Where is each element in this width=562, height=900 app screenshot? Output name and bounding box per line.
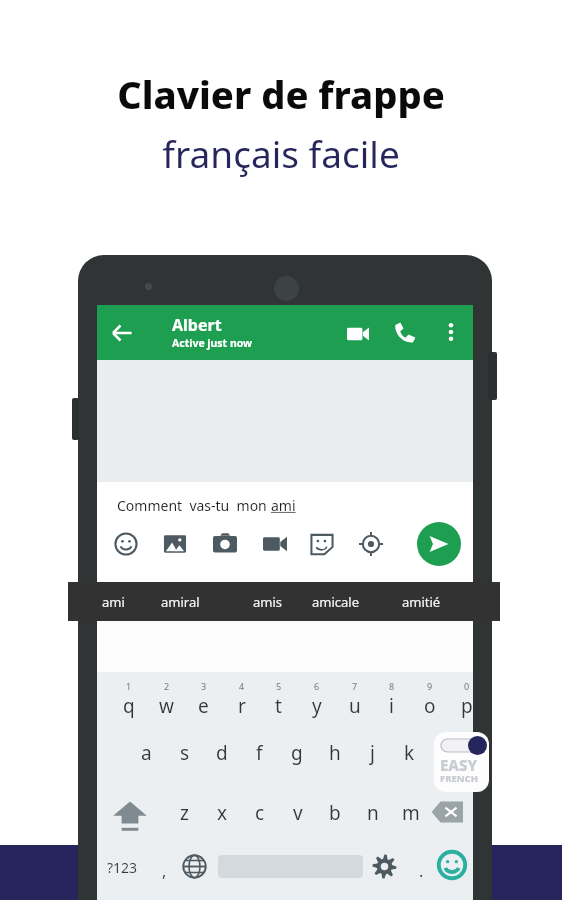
button[interactable]: Emoji keyboard: [437, 850, 467, 880]
staticText: .: [419, 860, 424, 882]
button[interactable]: Location: [359, 532, 383, 556]
button[interactable]: More options: [441, 322, 461, 342]
button[interactable]: Call: [394, 322, 416, 344]
button[interactable]: 7: [336, 678, 373, 730]
staticText: 2: [164, 680, 170, 692]
button[interactable]: Sticker: [310, 532, 334, 556]
button[interactable]: d: [203, 734, 240, 782]
staticText: s: [180, 740, 190, 766]
staticText: r: [238, 693, 246, 719]
button[interactable]: k: [391, 734, 428, 782]
staticText: Albert: [172, 314, 222, 336]
staticText: 1: [126, 680, 132, 692]
staticText: FRENCH: [440, 772, 478, 785]
button[interactable]: a: [128, 734, 165, 782]
button[interactable]: .: [407, 850, 435, 884]
staticText: amicale: [312, 593, 360, 611]
staticText: d: [216, 740, 228, 766]
staticText: 6: [314, 680, 320, 692]
button[interactable]: Gallery: [163, 532, 187, 556]
staticText: n: [367, 800, 379, 826]
button[interactable]: Backspace: [431, 800, 463, 824]
staticText: ami: [271, 496, 296, 515]
staticText: b: [329, 800, 341, 826]
button[interactable]: Send: [417, 522, 461, 566]
staticText: amiral: [161, 593, 200, 611]
staticText: o: [424, 693, 436, 719]
staticText: amis: [253, 593, 283, 611]
staticText: t: [275, 693, 282, 719]
button[interactable]: Video call: [347, 323, 369, 345]
button[interactable]: l: [429, 734, 466, 782]
staticText: 0: [464, 680, 470, 692]
staticText: j: [370, 740, 375, 766]
staticText: 8: [389, 680, 395, 692]
button[interactable]: ,: [149, 850, 179, 884]
button[interactable]: 8: [373, 678, 410, 730]
button[interactable]: Back: [107, 318, 137, 348]
staticText: m: [402, 800, 420, 826]
button[interactable]: amitié: [396, 582, 446, 621]
button[interactable]: Easy French toggle: [434, 732, 489, 792]
button[interactable]: 3: [185, 678, 222, 730]
staticText: i: [389, 693, 394, 719]
staticText: ?123: [107, 858, 138, 877]
staticText: c: [255, 800, 265, 826]
staticText: ami: [102, 593, 125, 611]
button[interactable]: ami: [88, 582, 138, 621]
button[interactable]: z: [166, 794, 203, 840]
staticText: x: [217, 800, 228, 826]
staticText: Clavier de frappe: [117, 68, 445, 120]
staticText: k: [404, 740, 415, 766]
button[interactable]: v: [279, 794, 316, 840]
staticText: z: [180, 800, 189, 826]
button[interactable]: 4: [223, 678, 260, 730]
staticText: p: [461, 693, 473, 719]
button[interactable]: 1: [110, 678, 147, 730]
button[interactable]: m: [392, 794, 429, 840]
staticText: w: [159, 693, 174, 719]
button[interactable]: 0: [448, 678, 485, 730]
staticText: 7: [352, 680, 358, 692]
button[interactable]: amiral: [155, 582, 205, 621]
button[interactable]: 2: [148, 678, 185, 730]
staticText: g: [291, 740, 303, 766]
button[interactable]: amis: [243, 582, 293, 621]
button[interactable]: f: [241, 734, 278, 782]
button[interactable]: s: [166, 734, 203, 782]
button[interactable]: Video: [263, 532, 287, 556]
staticText: y: [312, 693, 322, 719]
button[interactable]: Emoji: [114, 532, 138, 556]
button[interactable]: Settings: [372, 854, 397, 879]
button[interactable]: n: [354, 794, 391, 840]
staticText: 5: [276, 680, 282, 692]
staticText: f: [256, 740, 263, 766]
staticText: e: [198, 693, 209, 719]
button[interactable]: g: [278, 734, 315, 782]
staticText: l: [445, 740, 450, 766]
button[interactable]: amicale: [311, 582, 361, 621]
button[interactable]: Shift: [109, 794, 151, 836]
staticText: français facile: [162, 128, 400, 178]
button[interactable]: 9: [411, 678, 448, 730]
staticText: ,: [162, 860, 167, 882]
button[interactable]: c: [241, 794, 278, 840]
staticText: h: [329, 740, 341, 766]
button[interactable]: h: [316, 734, 353, 782]
staticText: Active just now: [172, 336, 253, 350]
staticText: 9: [427, 680, 433, 692]
staticText: q: [123, 693, 135, 719]
staticText: 3: [201, 680, 207, 692]
button[interactable]: j: [354, 734, 391, 782]
button[interactable]: b: [316, 794, 353, 840]
button[interactable]: 5: [260, 678, 297, 730]
staticText: a: [141, 740, 152, 766]
button[interactable]: x: [204, 794, 241, 840]
staticText: v: [293, 800, 303, 826]
button[interactable]: 6: [298, 678, 335, 730]
button[interactable]: Change language: [182, 854, 207, 879]
button[interactable]: ?123: [99, 850, 145, 884]
button[interactable]: Camera: [213, 532, 237, 556]
staticText: EASY: [440, 755, 478, 775]
